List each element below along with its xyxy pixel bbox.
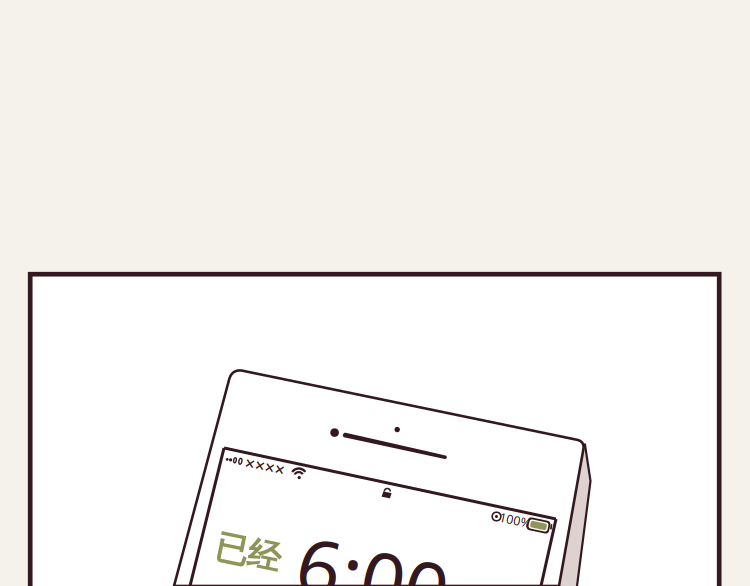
staticText: 6:00	[296, 526, 449, 586]
staticText: ××××	[239, 451, 291, 481]
staticText: 已经	[215, 532, 281, 573]
staticText: 100%	[493, 508, 537, 531]
